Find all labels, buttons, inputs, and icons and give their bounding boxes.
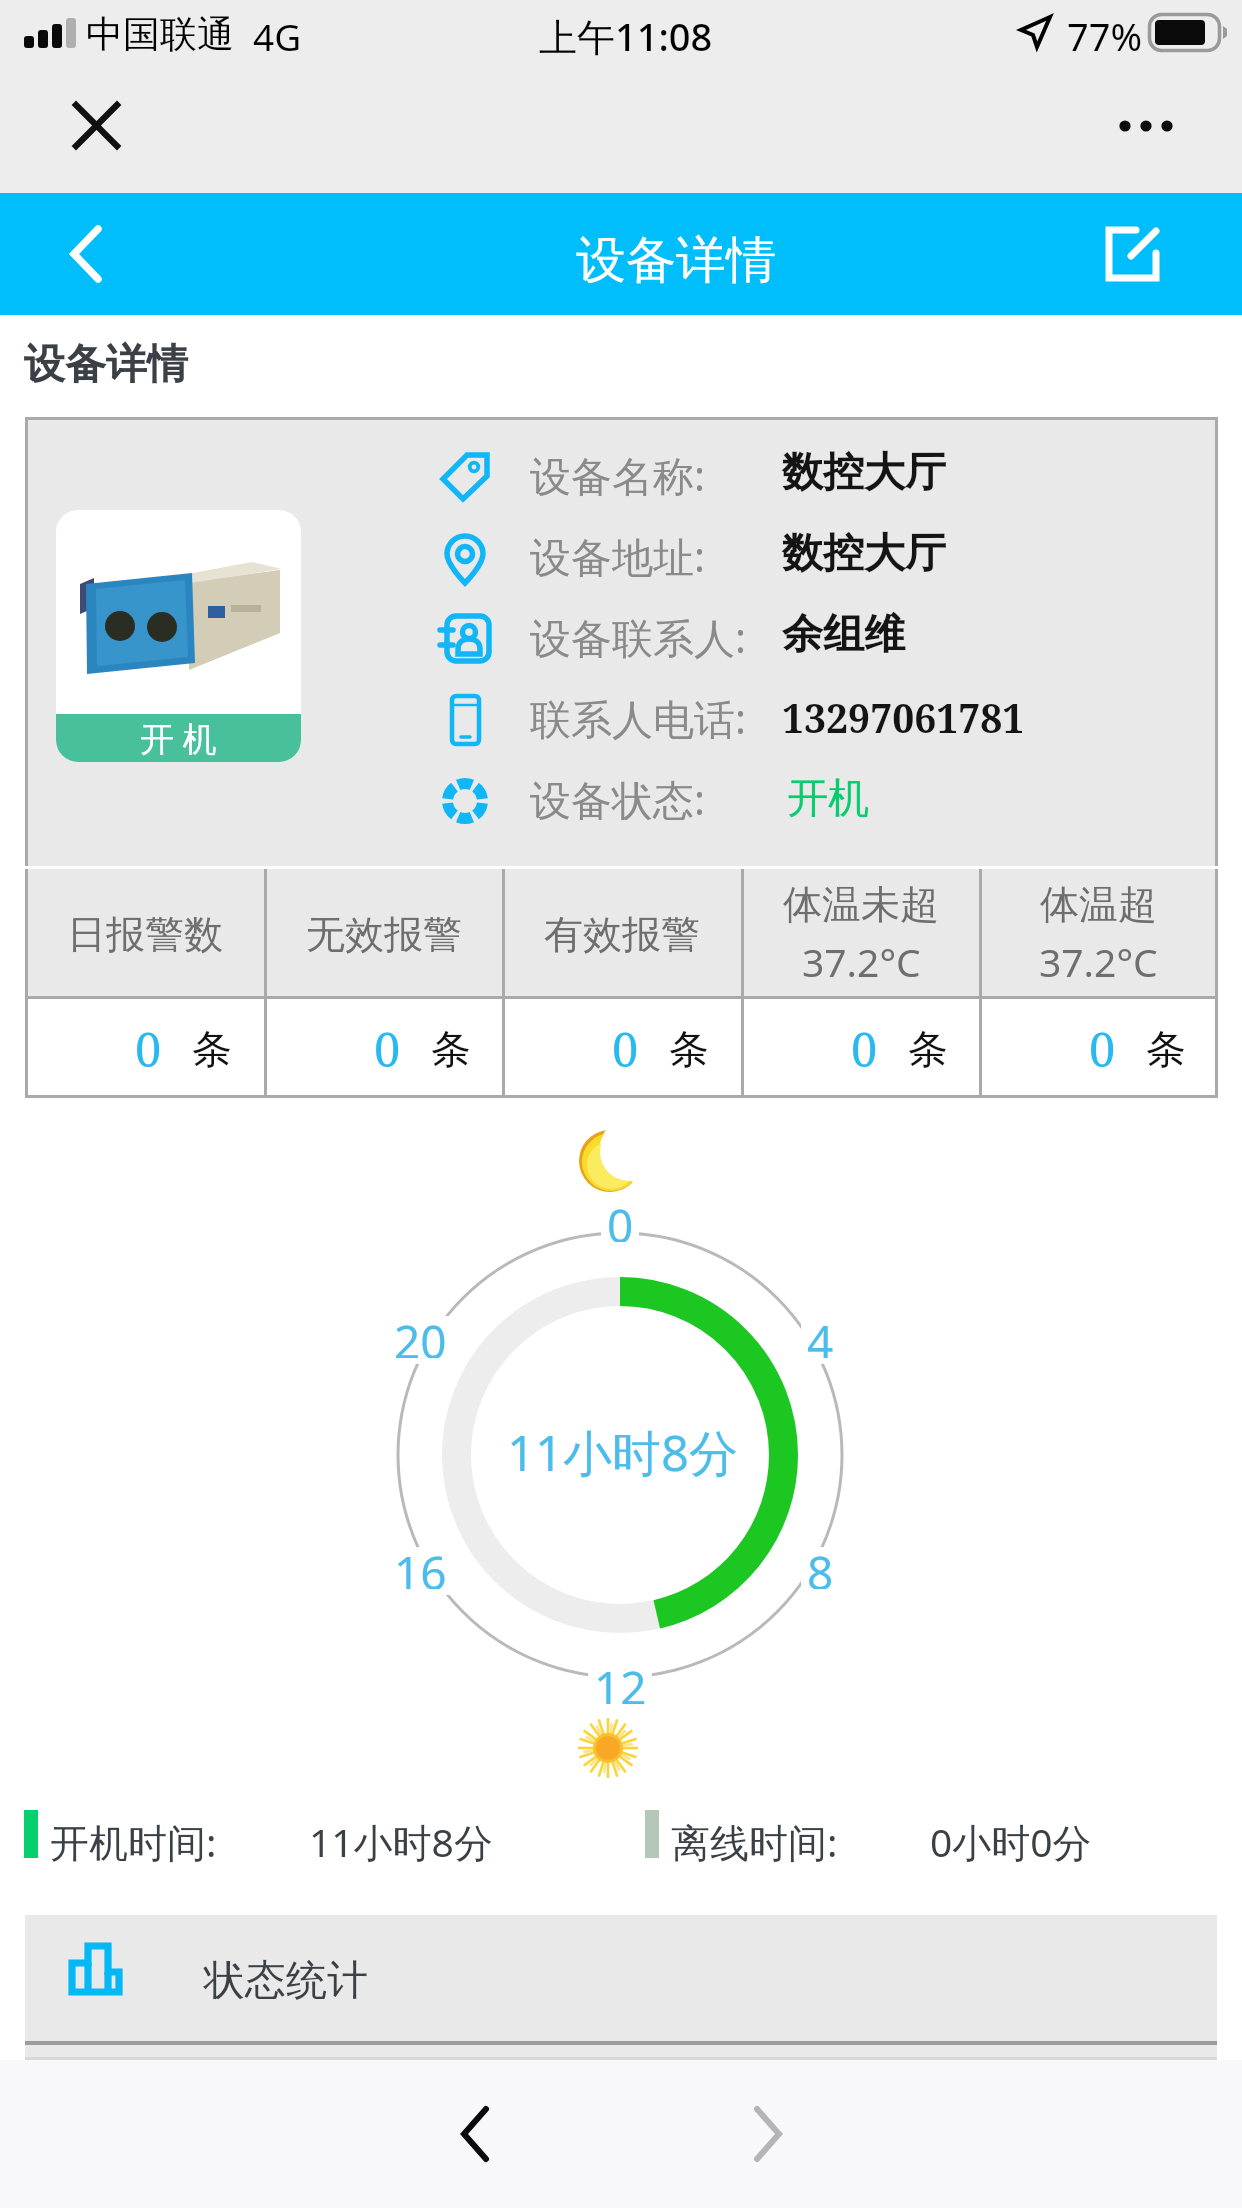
staticText: 4 xyxy=(807,1310,834,1358)
staticText: 77% xyxy=(1067,10,1143,62)
staticText: 状态统计 xyxy=(204,1955,368,2007)
staticText: 无效报警 xyxy=(306,910,462,959)
button[interactable]: Edit xyxy=(1072,193,1192,315)
staticText: 16 xyxy=(394,1541,447,1589)
staticText: 8 xyxy=(807,1541,834,1589)
staticText: 条 xyxy=(1146,1024,1186,1074)
staticText: 设备状态: xyxy=(530,771,705,827)
staticText: 0 xyxy=(135,1017,162,1081)
staticText: 0 xyxy=(1089,1017,1116,1081)
staticText: 设备详情 xyxy=(576,229,776,292)
staticText: 11小时8分 xyxy=(309,1815,493,1863)
staticText: 条 xyxy=(908,1024,948,1074)
staticText: 0小时0分 xyxy=(930,1815,1092,1863)
staticText: 设备详情 xyxy=(24,339,188,391)
button[interactable]: Navigate back xyxy=(425,2084,525,2184)
staticText: 设备地址: xyxy=(530,528,705,584)
staticText: 设备联系人: xyxy=(530,609,746,665)
staticText: 开机时间: xyxy=(50,1815,217,1863)
staticText: 条 xyxy=(669,1024,709,1074)
staticText: 12 xyxy=(594,1656,647,1704)
button[interactable]: 状态统计 xyxy=(25,1915,1217,2060)
staticText: 0 xyxy=(607,1194,634,1242)
staticText: 20 xyxy=(394,1310,447,1358)
staticText: 条 xyxy=(192,1024,232,1074)
staticText: 联系人电话: xyxy=(530,690,746,746)
staticText: 0 xyxy=(612,1017,639,1081)
staticText: 体温未超 xyxy=(783,880,939,929)
staticText: 37.2°C xyxy=(1039,935,1158,988)
staticText: 体温超 xyxy=(1040,880,1157,929)
button[interactable]: Back xyxy=(28,193,144,315)
button[interactable]: More options xyxy=(1081,85,1211,167)
staticText: 0 xyxy=(851,1017,878,1081)
staticText: 日报警数 xyxy=(67,910,223,959)
staticText: 中国联通 xyxy=(86,11,234,58)
staticText: 11小时8分 xyxy=(507,1419,739,1486)
staticText: 数控大厅 xyxy=(782,528,946,580)
staticText: 数控大厅 xyxy=(782,447,946,499)
staticText: 离线时间: xyxy=(671,1815,838,1863)
staticText: 13297061781 xyxy=(782,691,1025,744)
button[interactable]: Close xyxy=(46,84,146,166)
button[interactable]: Navigate forward xyxy=(718,2084,818,2184)
staticText: 有效报警 xyxy=(544,910,700,959)
staticText: 4G xyxy=(253,11,302,61)
staticText: 0 xyxy=(374,1017,401,1081)
staticText: 37.2°C xyxy=(802,935,921,988)
staticText: 上午11:08 xyxy=(539,10,713,62)
staticText: 设备名称: xyxy=(530,447,705,503)
staticText: 开 机 xyxy=(140,715,217,761)
staticText: 条 xyxy=(431,1024,471,1074)
staticText: 开机 xyxy=(787,773,869,825)
staticText: 余组维 xyxy=(782,609,905,661)
